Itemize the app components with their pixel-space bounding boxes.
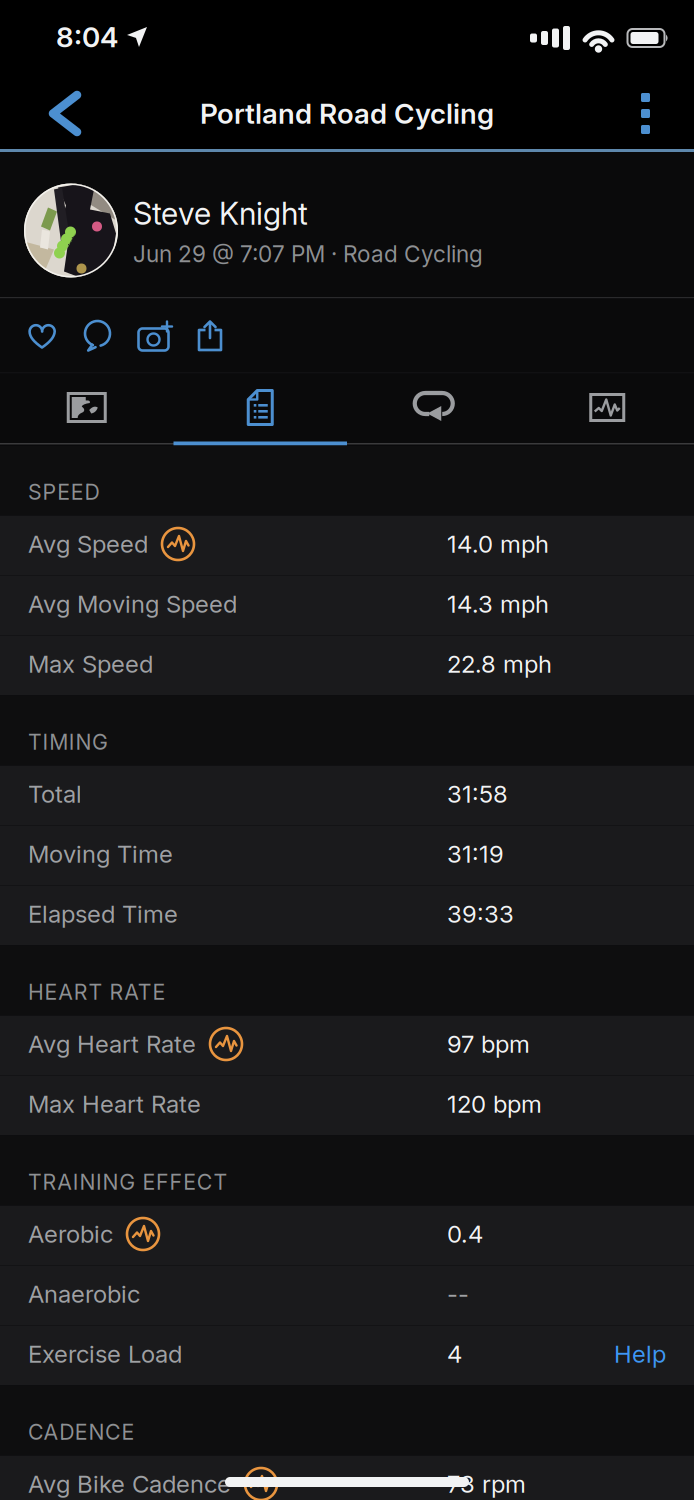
staticText: Total: [28, 780, 82, 808]
staticText: Elapsed Time: [28, 900, 178, 928]
staticText: HEART RATE: [28, 979, 165, 1004]
staticText: 0.4: [447, 1220, 483, 1248]
button[interactable]: Charts: [520, 373, 694, 441]
button[interactable]: Comment: [69, 298, 126, 372]
button[interactable]: Help: [614, 1340, 666, 1368]
button[interactable]: Share: [185, 298, 235, 372]
staticText: 31:58: [447, 780, 508, 808]
staticText: Jun 29 @ 7:07 PM · Road Cycling: [133, 241, 483, 267]
staticText: SPEED: [28, 479, 99, 504]
staticText: 22.8 mph: [447, 650, 552, 678]
button[interactable]: Back: [0, 92, 83, 135]
staticText: Avg Bike Cadence: [28, 1470, 231, 1498]
staticText: CADENCE: [28, 1419, 135, 1444]
staticText: Avg Heart Rate: [28, 1030, 196, 1058]
button[interactable]: Add photo: [126, 298, 185, 372]
staticText: Help: [614, 1340, 666, 1368]
staticText: Max Speed: [28, 650, 153, 678]
staticText: Exercise Load: [28, 1340, 182, 1368]
staticText: --: [447, 1280, 469, 1308]
staticText: 39:33: [447, 900, 514, 928]
staticText: 73 rpm: [447, 1470, 526, 1498]
staticText: 31:19: [447, 840, 504, 868]
staticText: Avg Moving Speed: [28, 590, 237, 618]
staticText: Anaerobic: [28, 1280, 140, 1308]
staticText: Steve Knight: [133, 195, 308, 232]
button[interactable]: More options: [641, 93, 694, 134]
staticText: Max Heart Rate: [28, 1090, 201, 1118]
staticText: Portland Road Cycling: [200, 97, 494, 130]
staticText: 14.3 mph: [447, 590, 549, 618]
button[interactable]: Like: [15, 298, 69, 372]
staticText: Aerobic: [28, 1220, 113, 1248]
staticText: 120 bpm: [447, 1090, 542, 1118]
staticText: 8:04: [56, 20, 118, 53]
staticText: 14.0 mph: [447, 530, 549, 558]
staticText: 4: [447, 1340, 462, 1368]
button[interactable]: Stats: [173, 373, 347, 441]
staticText: Moving Time: [28, 840, 173, 868]
staticText: 97 bpm: [447, 1030, 530, 1058]
staticText: Avg Speed: [28, 530, 148, 558]
staticText: TRAINING EFFECT: [28, 1169, 227, 1194]
button[interactable]: Map: [0, 373, 173, 441]
button[interactable]: Laps: [347, 373, 520, 441]
staticText: TIMING: [28, 729, 108, 754]
